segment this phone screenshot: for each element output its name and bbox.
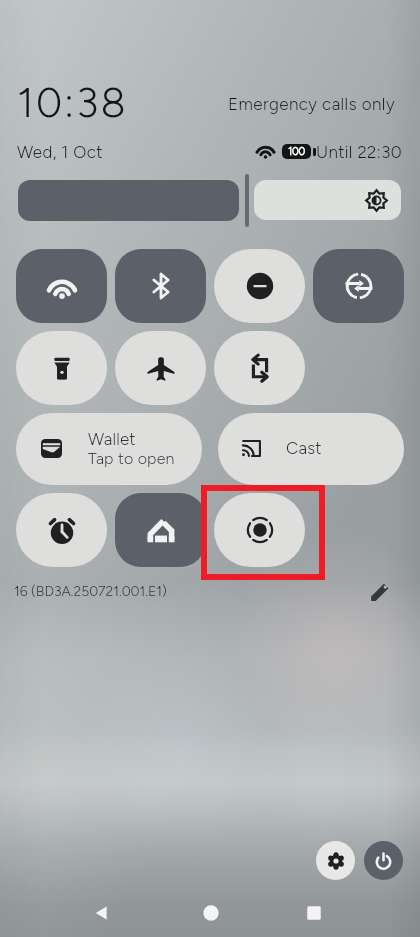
button[interactable]: Bluetooth xyxy=(115,249,206,323)
button[interactable]: Back xyxy=(88,898,118,928)
button[interactable]: Auto rotate xyxy=(313,249,404,323)
staticText: Cast xyxy=(286,438,322,458)
button[interactable]: Edit xyxy=(365,578,393,606)
staticText: Emergency calls only xyxy=(228,94,395,114)
staticText: Tap to open xyxy=(88,449,175,468)
staticText: 10:38 xyxy=(17,78,128,127)
button[interactable]: Power xyxy=(364,841,403,880)
button[interactable]: Device controls xyxy=(214,493,305,567)
staticText: Wed, 1 Oct xyxy=(17,142,103,162)
staticText: 16 (BD3A.250721.001.E1) xyxy=(14,583,167,600)
button[interactable]: Airplane mode xyxy=(115,331,206,405)
button[interactable]: Settings xyxy=(316,841,355,880)
button[interactable]: Wi-Fi xyxy=(16,249,107,323)
button[interactable]: Alarm xyxy=(16,493,107,567)
staticText: 100 xyxy=(288,145,306,158)
staticText: Wallet xyxy=(88,429,136,449)
button[interactable]: Recents xyxy=(299,898,329,928)
button[interactable]: Wallet xyxy=(16,413,202,485)
button[interactable]: Do not disturb xyxy=(214,249,305,323)
button[interactable]: Volume xyxy=(18,180,239,221)
button[interactable]: Cast xyxy=(218,413,404,485)
button[interactable]: Home xyxy=(115,493,206,567)
staticText: Until 22:30 xyxy=(316,142,402,162)
button[interactable]: Flashlight xyxy=(16,331,107,405)
button[interactable]: Screen record xyxy=(214,331,305,405)
button[interactable]: Home xyxy=(196,898,226,928)
button[interactable]: Brightness xyxy=(254,180,401,220)
